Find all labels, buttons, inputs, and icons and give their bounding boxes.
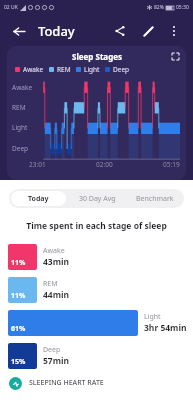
button[interactable]: More options	[163, 20, 185, 42]
button[interactable]: Benchmark	[128, 191, 182, 206]
staticText: 61%	[11, 324, 26, 334]
staticText: 11%	[11, 258, 26, 268]
staticText: Deep	[12, 144, 29, 153]
staticText: 15%	[11, 357, 26, 367]
button[interactable]: Edit	[137, 20, 159, 42]
staticText: 23:01	[29, 160, 46, 169]
staticText: 44min	[43, 289, 70, 301]
staticText: 02:00	[96, 160, 113, 169]
staticText: 43min	[43, 256, 70, 268]
staticText: SLEEPING HEART RATE	[29, 378, 104, 388]
staticText: Light	[144, 312, 161, 322]
staticText: 05:30	[176, 4, 189, 11]
button[interactable]: Back	[8, 20, 30, 42]
staticText: 05:19	[163, 160, 180, 169]
button[interactable]: Expand chart	[169, 50, 181, 62]
staticText: Deep	[43, 345, 61, 355]
staticText: Today	[28, 194, 49, 204]
staticText: Awake	[43, 246, 65, 256]
staticText: 3hr 54min	[144, 322, 187, 334]
staticText: 30 Day Avg	[79, 194, 116, 204]
button[interactable]: Sleep Stages	[7, 46, 186, 180]
button[interactable]: 30 Day Avg	[70, 191, 124, 206]
button[interactable]: 11%	[0, 244, 193, 270]
button[interactable]: SLEEPING HEART RATE	[0, 370, 193, 396]
staticText: Sleep Stages	[72, 51, 122, 62]
staticText: Light	[84, 65, 100, 74]
staticText: Awake	[23, 65, 44, 74]
button[interactable]: Share	[109, 20, 131, 42]
button[interactable]: 61%	[0, 310, 193, 336]
staticText: REM	[57, 65, 71, 74]
staticText: 02 UK	[4, 4, 18, 11]
staticText: 11%	[11, 291, 26, 301]
staticText: 82%	[154, 4, 164, 11]
button[interactable]: 15%	[0, 343, 193, 369]
button[interactable]: Today	[11, 191, 66, 206]
staticText: Deep	[113, 65, 130, 74]
staticText: Benchmark	[136, 194, 174, 204]
staticText: REM	[43, 279, 58, 289]
button[interactable]: 11%	[0, 277, 193, 303]
staticText: Time spent in each stage of sleep	[26, 220, 167, 232]
staticText: Today	[38, 22, 75, 40]
staticText: 57min	[43, 355, 70, 367]
staticText: Awake	[12, 83, 33, 92]
staticText: Light	[12, 123, 28, 132]
staticText: REM	[12, 103, 26, 112]
